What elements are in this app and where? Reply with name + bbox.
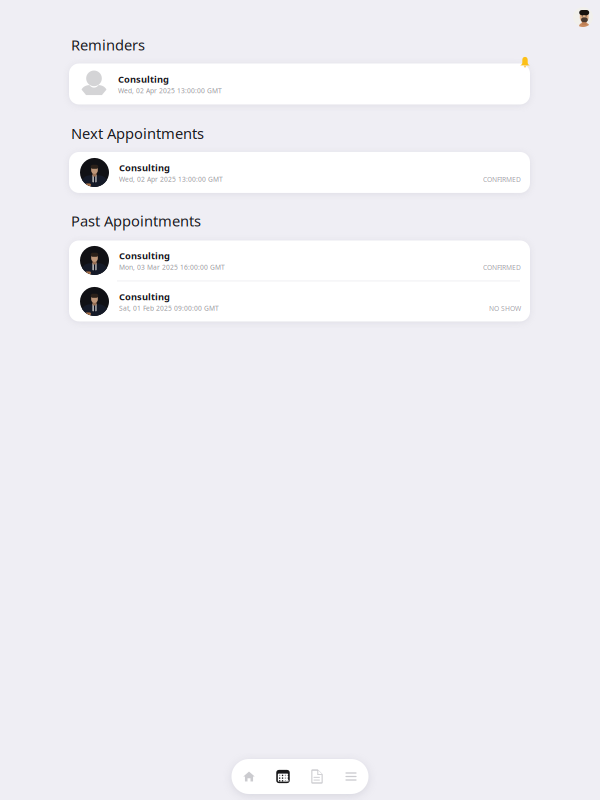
button[interactable]: Profile bbox=[573, 7, 593, 27]
button[interactable]: Documents bbox=[300, 759, 334, 794]
staticText: CONFIRMED bbox=[483, 175, 521, 184]
button[interactable]: Consulting bbox=[69, 240, 530, 280]
staticText: Wed, 02 Apr 2025 13:00:00 GMT bbox=[118, 86, 222, 95]
button[interactable]: Consulting bbox=[69, 281, 530, 321]
staticText: NO SHOW bbox=[489, 304, 521, 313]
staticText: Consulting bbox=[119, 290, 170, 303]
staticText: Consulting bbox=[118, 73, 169, 85]
staticText: Next Appointments bbox=[71, 123, 204, 143]
button[interactable]: Home bbox=[232, 759, 266, 794]
staticText: Mon, 03 Mar 2025 16:00:00 GMT bbox=[119, 263, 225, 272]
button[interactable]: Consulting bbox=[69, 63, 530, 104]
staticText: Consulting bbox=[119, 161, 170, 174]
staticText: Wed, 02 Apr 2025 13:00:00 GMT bbox=[119, 175, 223, 184]
staticText: Reminders bbox=[71, 35, 145, 54]
staticText: Past Appointments bbox=[71, 211, 201, 230]
button[interactable]: Menu bbox=[334, 759, 368, 794]
staticText: Consulting bbox=[119, 249, 170, 262]
staticText: CONFIRMED bbox=[483, 263, 521, 272]
button[interactable]: Consulting bbox=[69, 152, 530, 193]
button[interactable]: Calendar bbox=[266, 759, 300, 794]
staticText: Sat, 01 Feb 2025 09:00:00 GMT bbox=[119, 304, 219, 313]
